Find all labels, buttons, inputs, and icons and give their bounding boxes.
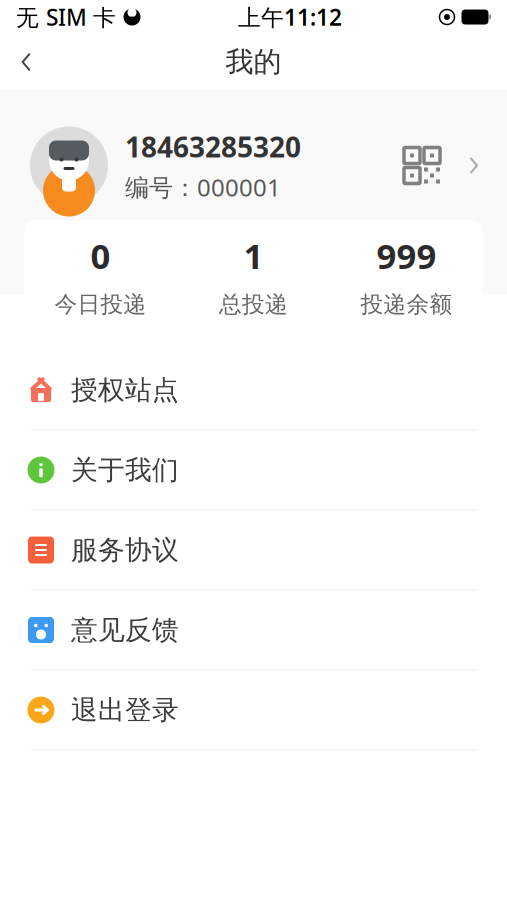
staticText: 关于我们	[71, 454, 179, 486]
staticText: 总投递	[219, 291, 288, 318]
staticText: 投递余额	[360, 291, 452, 318]
staticText: 我的	[225, 45, 281, 79]
button[interactable]: 18463285320	[0, 110, 507, 220]
staticText: 服务协议	[71, 534, 179, 566]
button[interactable]: 服务协议	[0, 510, 507, 589]
staticText: 意见反馈	[71, 614, 179, 646]
staticText: 18463285320	[125, 128, 301, 165]
staticText: 退出登录	[71, 694, 179, 726]
staticText: 1	[243, 233, 263, 279]
button[interactable]: 退出登录	[0, 670, 507, 749]
button[interactable]: 授权站点	[0, 350, 507, 429]
staticText: 999	[376, 233, 436, 279]
staticText: 授权站点	[71, 374, 179, 406]
staticText: 编号：000001	[125, 171, 281, 203]
button[interactable]: 返回	[0, 34, 52, 90]
staticText: 今日投递	[54, 291, 146, 318]
staticText: 无 SIM 卡	[16, 2, 116, 32]
button[interactable]: 意见反馈	[0, 590, 507, 669]
staticText: 0	[90, 233, 110, 279]
staticText: 上午11:12	[238, 2, 342, 32]
button[interactable]: 关于我们	[0, 430, 507, 509]
